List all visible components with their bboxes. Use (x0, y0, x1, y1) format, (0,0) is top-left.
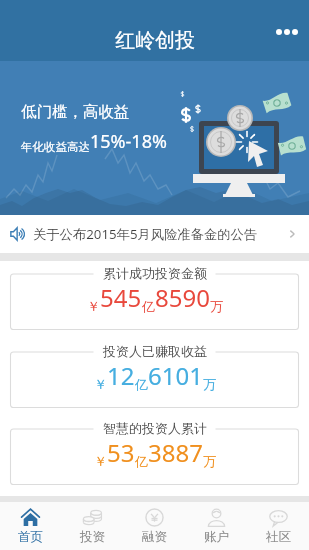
staticText: 投资人已赚取收益 (103, 343, 207, 359)
staticText: 8590 (155, 281, 210, 314)
staticText: 年化收益高达 (21, 140, 90, 154)
button[interactable]: 智慧的投资人累计 (10, 420, 299, 485)
button[interactable]: 累计成功投资金额 (10, 265, 299, 330)
staticText: 万 (203, 453, 216, 469)
staticText: 累计成功投资金额 (103, 265, 207, 281)
staticText: 53 (107, 436, 135, 469)
button[interactable]: 社区 (247, 502, 309, 550)
staticText: 融资 (142, 529, 167, 545)
staticText: 低门槛，高收益 (21, 102, 130, 122)
staticText: 万 (210, 298, 223, 314)
button[interactable]: 投资 (61, 502, 123, 550)
staticText: 亿 (142, 298, 155, 314)
button[interactable]: 首页 (0, 502, 61, 550)
staticText: 12 (107, 359, 135, 392)
staticText: 万 (203, 376, 216, 392)
staticText: ￥ (94, 453, 107, 469)
staticText: 红岭创投 (115, 28, 195, 53)
button[interactable]: 融资 (123, 502, 185, 550)
button[interactable]: 账户 (185, 502, 247, 550)
staticText: 15%-18% (90, 129, 167, 154)
staticText: 社区 (266, 529, 291, 545)
staticText: 投资 (80, 529, 105, 545)
staticText: ￥ (87, 298, 100, 314)
staticText: 亿 (135, 453, 148, 469)
staticText: 账户 (204, 529, 229, 545)
staticText: 亿 (135, 376, 148, 392)
staticText: 关于公布2015年5月风险准备金的公告 (33, 225, 258, 243)
button[interactable]: 关于公布2015年5月风险准备金的公告 (0, 215, 309, 253)
staticText: 智慧的投资人累计 (103, 420, 207, 436)
staticText: 首页 (18, 529, 43, 545)
staticText: 6101 (148, 359, 203, 392)
staticText: 3887 (148, 436, 203, 469)
staticText: ￥ (94, 376, 107, 392)
button[interactable]: 投资人已赚取收益 (10, 343, 299, 408)
button[interactable]: More options (262, 0, 309, 48)
staticText: 545 (100, 281, 142, 314)
